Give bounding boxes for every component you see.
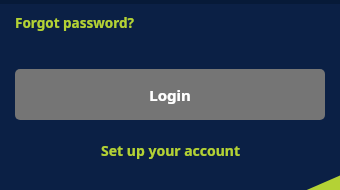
- staticText: Forgot password?: [15, 14, 134, 32]
- button[interactable]: Login: [15, 69, 325, 120]
- staticText: Login: [149, 85, 191, 105]
- staticText: Set up your account: [101, 141, 240, 160]
- button[interactable]: Set up your account: [95, 139, 246, 162]
- button[interactable]: Forgot password?: [15, 13, 134, 33]
